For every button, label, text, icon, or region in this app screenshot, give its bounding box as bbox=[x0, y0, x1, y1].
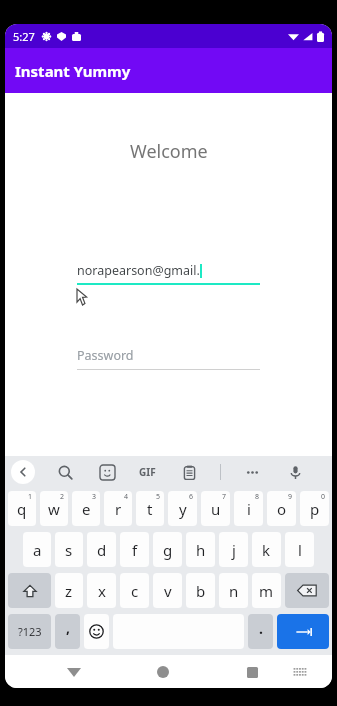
button[interactable]: Home bbox=[148, 657, 178, 687]
staticText: k bbox=[262, 540, 271, 560]
staticText: y bbox=[179, 499, 187, 519]
staticText: ?123 bbox=[18, 624, 42, 639]
staticText: Instant Yummy bbox=[15, 61, 131, 81]
button[interactable]: Recents bbox=[237, 657, 267, 687]
button[interactable]: Clipboard bbox=[177, 460, 201, 484]
staticText: d bbox=[97, 540, 107, 560]
staticText: g bbox=[163, 540, 173, 560]
staticText: 1 bbox=[28, 492, 33, 502]
button[interactable]: Shift bbox=[8, 573, 51, 608]
staticText: 8 bbox=[255, 492, 260, 502]
staticText: c bbox=[131, 581, 139, 601]
staticText: i bbox=[247, 499, 251, 519]
staticText: z bbox=[65, 581, 73, 601]
staticText: v bbox=[164, 581, 172, 601]
button[interactable]: d bbox=[87, 532, 116, 567]
button[interactable]: y bbox=[168, 491, 197, 526]
staticText: a bbox=[33, 540, 42, 560]
button[interactable]: t bbox=[136, 491, 164, 526]
staticText: Welcome bbox=[130, 139, 208, 164]
staticText: m bbox=[259, 581, 274, 601]
button[interactable]: c bbox=[120, 573, 149, 608]
staticText: w bbox=[48, 499, 60, 519]
button[interactable]: v bbox=[153, 573, 182, 608]
staticText: j bbox=[232, 540, 236, 560]
button[interactable]: z bbox=[55, 573, 83, 608]
button[interactable]: , bbox=[55, 614, 80, 649]
staticText: 0 bbox=[321, 492, 326, 502]
staticText: 4 bbox=[124, 492, 129, 502]
button[interactable]: Voice input bbox=[283, 460, 307, 484]
staticText: x bbox=[98, 581, 106, 601]
button[interactable]: . bbox=[248, 614, 273, 649]
button[interactable]: Back bbox=[59, 657, 89, 687]
button[interactable]: n bbox=[219, 573, 248, 608]
staticText: p bbox=[310, 499, 320, 519]
staticText: 9 bbox=[288, 492, 293, 502]
button[interactable]: w bbox=[40, 491, 68, 526]
staticText: norapearson@gmail. bbox=[77, 262, 200, 279]
staticText: r bbox=[115, 499, 122, 519]
staticText: b bbox=[196, 581, 206, 601]
button[interactable]: norapearson@gmail. bbox=[77, 262, 260, 285]
button[interactable]: a bbox=[23, 532, 51, 567]
button[interactable]: j bbox=[219, 532, 248, 567]
staticText: t bbox=[147, 499, 153, 519]
button[interactable]: Enter bbox=[277, 614, 329, 649]
staticText: 6 bbox=[189, 492, 194, 502]
staticText: GIF bbox=[139, 465, 156, 479]
staticText: o bbox=[277, 499, 287, 519]
staticText: 5 bbox=[156, 492, 161, 502]
button[interactable]: More options bbox=[240, 460, 264, 484]
button[interactable]: q bbox=[8, 491, 36, 526]
button[interactable]: Stickers bbox=[95, 460, 119, 484]
staticText: e bbox=[82, 499, 91, 519]
button[interactable]: Back bbox=[11, 460, 35, 484]
button[interactable]: u bbox=[201, 491, 230, 526]
button[interactable]: k bbox=[252, 532, 281, 567]
button[interactable]: e bbox=[72, 491, 100, 526]
button[interactable]: s bbox=[55, 532, 83, 567]
staticText: q bbox=[17, 499, 27, 519]
button[interactable]: ?123 bbox=[8, 614, 51, 649]
staticText: h bbox=[196, 540, 206, 560]
staticText: 5:27 bbox=[13, 29, 35, 44]
button[interactable]: m bbox=[252, 573, 281, 608]
button[interactable]: l bbox=[285, 532, 314, 567]
button[interactable]: x bbox=[87, 573, 116, 608]
staticText: 2 bbox=[60, 492, 65, 502]
staticText: 3 bbox=[92, 492, 97, 502]
button[interactable]: Search bbox=[53, 460, 77, 484]
button[interactable]: g bbox=[153, 532, 182, 567]
staticText: f bbox=[132, 540, 138, 560]
button[interactable]: r bbox=[104, 491, 132, 526]
staticText: s bbox=[65, 540, 73, 560]
button[interactable]: p bbox=[300, 491, 329, 526]
button[interactable]: GIF bbox=[137, 463, 158, 481]
button[interactable]: b bbox=[186, 573, 215, 608]
button[interactable]: Emoji bbox=[84, 614, 109, 649]
button[interactable]: f bbox=[120, 532, 149, 567]
button[interactable]: Backspace bbox=[285, 573, 329, 608]
staticText: n bbox=[229, 581, 239, 601]
button[interactable]: o bbox=[267, 491, 296, 526]
staticText: . bbox=[259, 619, 263, 638]
staticText: 7 bbox=[222, 492, 227, 502]
staticText: Password bbox=[77, 347, 134, 364]
button[interactable]: i bbox=[234, 491, 263, 526]
staticText: l bbox=[298, 540, 302, 560]
button[interactable]: h bbox=[186, 532, 215, 567]
staticText: , bbox=[66, 618, 70, 637]
button[interactable]: Password bbox=[77, 347, 260, 370]
button[interactable]: Switch keyboard bbox=[287, 659, 313, 685]
staticText: u bbox=[211, 499, 221, 519]
